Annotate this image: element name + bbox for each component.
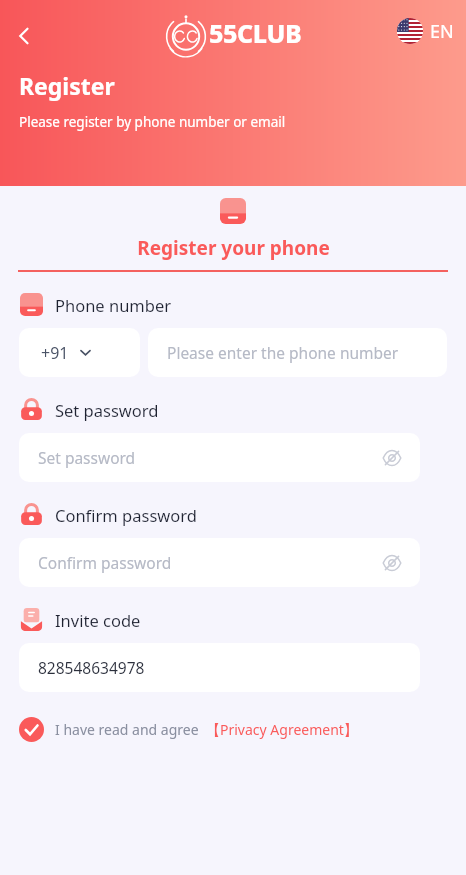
button[interactable]: I have read and agree [19, 715, 358, 744]
staticText: EN [430, 19, 454, 44]
staticText: Please register by phone number or email [19, 113, 286, 131]
staticText: Invite code [55, 609, 141, 631]
staticText: Phone number [55, 294, 172, 316]
staticText: Confirm password [55, 504, 197, 526]
button[interactable]: Show password [379, 550, 405, 576]
button[interactable]: Confirm password [19, 538, 420, 587]
staticText: I have read and agree [55, 720, 199, 739]
button[interactable]: EN [393, 14, 458, 48]
staticText: Set password [38, 447, 379, 468]
staticText: 55CLUB [209, 16, 302, 50]
button[interactable]: Please enter the phone number [148, 328, 447, 377]
staticText: Confirm password [38, 552, 379, 573]
staticText: Please enter the phone number [167, 342, 399, 363]
staticText: 828548634978 [38, 657, 145, 678]
button[interactable]: Show password [379, 445, 405, 471]
staticText: Register [19, 70, 115, 101]
button[interactable]: 828548634978 [19, 643, 420, 692]
button[interactable]: +91 [19, 328, 140, 377]
staticText: 【Privacy Agreement】 [206, 720, 358, 739]
button[interactable]: Back [4, 16, 44, 56]
staticText: Set password [55, 399, 159, 421]
button[interactable]: Set password [19, 433, 420, 482]
staticText: Register your phone [137, 235, 330, 261]
staticText: +91 [41, 342, 69, 364]
